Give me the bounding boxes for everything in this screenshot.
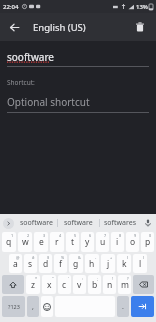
- staticText: 8: [119, 233, 122, 238]
- button[interactable]: g: [69, 254, 83, 273]
- staticText: 2: [27, 233, 30, 238]
- button[interactable]: ?123: [2, 296, 25, 317]
- staticText: 9: [134, 233, 137, 238]
- button[interactable]: Delete: [126, 13, 154, 41]
- staticText: h: [89, 258, 95, 270]
- button[interactable]: Navigate up: [0, 13, 28, 41]
- button[interactable]: d: [39, 254, 52, 273]
- staticText: g: [73, 258, 79, 270]
- button[interactable]: softwares: [100, 214, 141, 231]
- button[interactable]: i: [111, 232, 124, 252]
- staticText: +: [110, 255, 113, 260]
- button[interactable]: h: [85, 254, 99, 273]
- staticText: 22:04: [3, 3, 19, 11]
- staticText: .: [122, 302, 124, 312]
- staticText: :: [82, 276, 84, 281]
- button[interactable]: Shift: [2, 275, 24, 294]
- staticText: ?: [127, 276, 129, 281]
- staticText: t: [71, 236, 75, 248]
- staticText: l: [139, 258, 142, 270]
- staticText: v: [77, 279, 82, 291]
- staticText: z: [31, 279, 35, 291]
- button[interactable]: s: [24, 254, 37, 273]
- staticText: u: [100, 236, 106, 248]
- staticText: !: [112, 276, 114, 281]
- staticText: y: [85, 236, 90, 248]
- staticText: c: [62, 279, 67, 291]
- staticText: %: [61, 255, 65, 260]
- button[interactable]: Voice input: [141, 216, 155, 230]
- staticText: w: [22, 236, 29, 248]
- staticText: $: [47, 255, 50, 260]
- button[interactable]: a: [9, 254, 22, 273]
- button[interactable]: y: [81, 232, 94, 252]
- staticText: p: [145, 236, 151, 248]
- button[interactable]: m: [118, 275, 131, 294]
- button[interactable]: e: [34, 232, 48, 252]
- button[interactable]: Enter: [131, 296, 154, 317]
- button[interactable]: w: [18, 232, 32, 252]
- button[interactable]: f: [54, 254, 67, 273]
- button[interactable]: j: [101, 254, 115, 273]
- staticText: 0: [149, 233, 152, 238]
- staticText: softwares: [104, 218, 137, 228]
- staticText: ;: [97, 276, 99, 281]
- staticText: b: [92, 279, 98, 291]
- button[interactable]: software: [58, 214, 99, 231]
- staticText: x: [47, 279, 52, 291]
- button[interactable]: .: [117, 296, 129, 317]
- staticText: f: [59, 258, 62, 270]
- button[interactable]: Emoji: [41, 296, 53, 317]
- staticText: k: [122, 258, 127, 270]
- staticText: Shortcut:: [7, 78, 35, 87]
- button[interactable]: v: [73, 275, 86, 294]
- button[interactable]: k: [117, 254, 131, 273]
- staticText: *: [35, 276, 38, 281]
- button[interactable]: More suggestions: [0, 215, 16, 231]
- button[interactable]: sooftware: [16, 214, 57, 231]
- staticText: q: [6, 236, 12, 248]
- button[interactable]: c: [58, 275, 71, 294]
- staticText: d: [43, 258, 49, 270]
- staticText: -: [95, 255, 97, 260]
- button[interactable]: z: [26, 275, 40, 294]
- staticText: e: [39, 236, 44, 248]
- staticText: o: [130, 236, 136, 248]
- other: Shift: [9, 281, 17, 289]
- staticText: software: [64, 218, 93, 228]
- staticText: s: [28, 258, 33, 270]
- staticText: 4: [59, 233, 62, 238]
- staticText: 6: [89, 233, 92, 238]
- button[interactable]: q: [2, 232, 16, 252]
- button[interactable]: r: [50, 232, 64, 252]
- button[interactable]: Backspace: [133, 275, 154, 294]
- staticText: 3: [43, 233, 46, 238]
- staticText: @: [16, 255, 20, 260]
- button[interactable]: ,: [27, 296, 39, 317]
- staticText: m: [121, 279, 129, 291]
- button[interactable]: t: [66, 232, 79, 252]
- staticText: Optional shortcut: [7, 95, 90, 109]
- staticText: a: [13, 258, 18, 270]
- button[interactable]: o: [126, 232, 139, 252]
- staticText: &: [78, 255, 81, 260]
- other: Backspace: [139, 280, 148, 289]
- staticText: 5: [74, 233, 77, 238]
- staticText: j: [107, 258, 110, 270]
- staticText: ': [68, 276, 69, 281]
- staticText: ": [52, 276, 54, 281]
- staticText: English (US): [33, 21, 86, 34]
- button[interactable]: x: [42, 275, 56, 294]
- button[interactable]: p: [141, 232, 154, 252]
- staticText: r: [55, 236, 59, 248]
- staticText: ?123: [8, 303, 20, 310]
- staticText: sooftware: [20, 218, 53, 228]
- button[interactable]: l: [133, 254, 147, 273]
- staticText: 13%: [136, 3, 148, 11]
- button[interactable]: n: [103, 275, 116, 294]
- button[interactable]: b: [88, 275, 101, 294]
- staticText: i: [116, 236, 119, 248]
- button[interactable]: u: [96, 232, 109, 252]
- staticText: n: [107, 279, 113, 291]
